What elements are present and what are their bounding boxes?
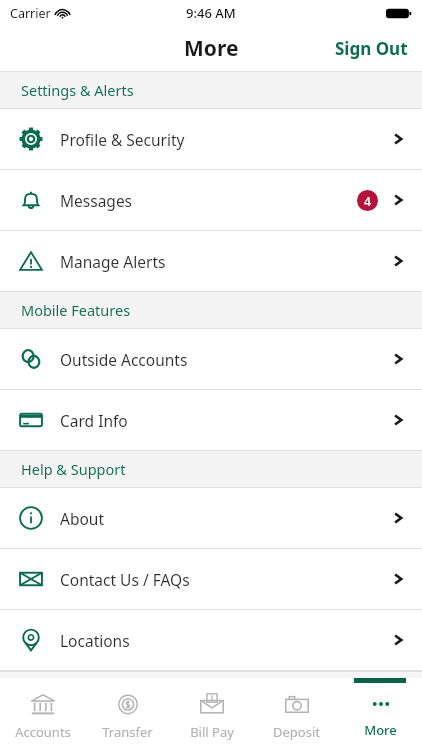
staticText: 4: [364, 193, 371, 209]
staticText: 9:46 AM: [186, 4, 236, 22]
staticText: Help & Support: [21, 459, 126, 479]
button[interactable]: Deposit: [254, 678, 338, 750]
staticText: Contact Us / FAQs: [60, 569, 390, 590]
staticText: Card Info: [60, 410, 390, 431]
staticText: Bill Pay: [190, 723, 234, 741]
button[interactable]: Contact Us / FAQs: [0, 549, 422, 609]
staticText: Profile & Security: [60, 129, 390, 150]
button[interactable]: Sign Out: [321, 31, 422, 66]
staticText: Carrier: [10, 5, 51, 22]
button[interactable]: More: [338, 678, 422, 750]
button[interactable]: Manage Alerts: [0, 231, 422, 291]
button[interactable]: Card Info: [0, 390, 422, 450]
button[interactable]: Profile & Security: [0, 109, 422, 169]
staticText: Settings & Alerts: [21, 80, 134, 100]
staticText: More: [364, 721, 397, 739]
staticText: More: [184, 34, 239, 63]
staticText: Mobile Features: [21, 300, 131, 320]
staticText: Messages: [60, 190, 357, 211]
staticText: Outside Accounts: [60, 349, 390, 370]
staticText: Manage Alerts: [60, 251, 390, 272]
staticText: Accounts: [15, 723, 71, 741]
button[interactable]: About: [0, 488, 422, 548]
staticText: About: [60, 508, 390, 529]
staticText: Deposit: [273, 723, 320, 741]
button[interactable]: Locations: [0, 610, 422, 670]
staticText: Transfer: [102, 723, 153, 741]
staticText: Sign Out: [335, 37, 408, 60]
button[interactable]: Bill Pay: [170, 678, 254, 750]
button[interactable]: Accounts: [0, 678, 85, 750]
staticText: Locations: [60, 630, 390, 651]
button[interactable]: Transfer: [85, 678, 170, 750]
button[interactable]: Outside Accounts: [0, 329, 422, 389]
button[interactable]: Messages: [0, 170, 422, 230]
